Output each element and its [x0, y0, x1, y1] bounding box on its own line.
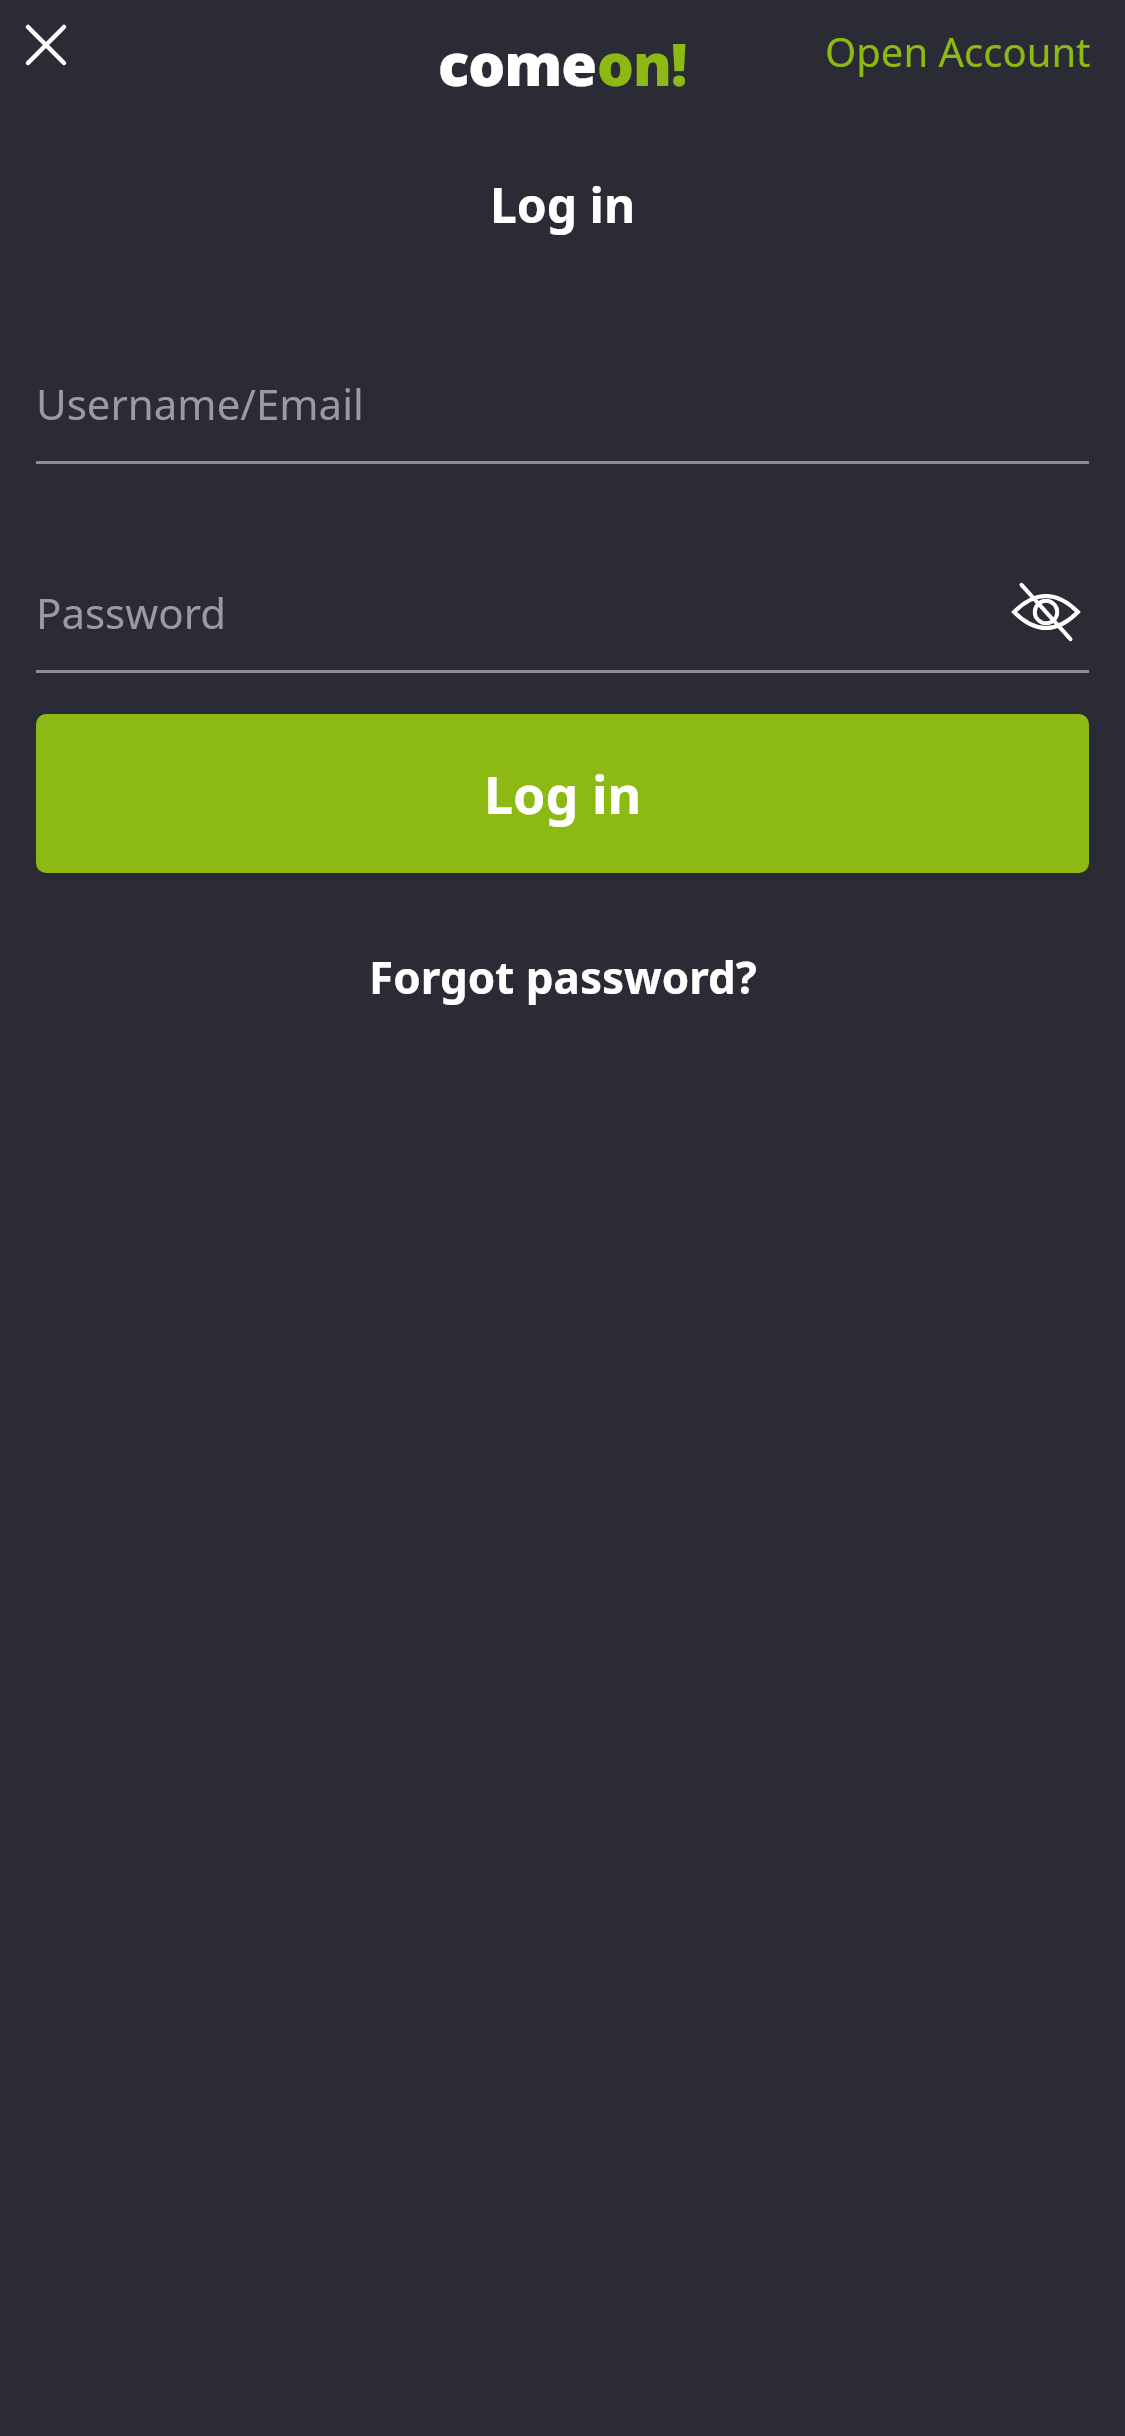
staticText: on! — [597, 24, 687, 103]
button[interactable]: Open Account — [811, 14, 1105, 88]
button[interactable]: Username/Email — [36, 367, 1089, 464]
button[interactable]: Forgot password? — [345, 935, 781, 1019]
button[interactable]: ComeOn home — [438, 24, 687, 103]
staticText: Open Account — [825, 24, 1091, 78]
staticText: Log in — [484, 758, 642, 829]
button[interactable]: Log in — [36, 714, 1089, 873]
staticText: Password — [36, 584, 226, 641]
button[interactable]: Show password — [1003, 576, 1089, 648]
staticText: come — [438, 24, 597, 103]
staticText: Forgot password? — [369, 947, 757, 1007]
staticText: Log in — [0, 172, 1125, 237]
button[interactable]: Close — [8, 7, 84, 83]
staticText: Username/Email — [36, 375, 364, 432]
button[interactable]: Password — [36, 576, 1089, 648]
